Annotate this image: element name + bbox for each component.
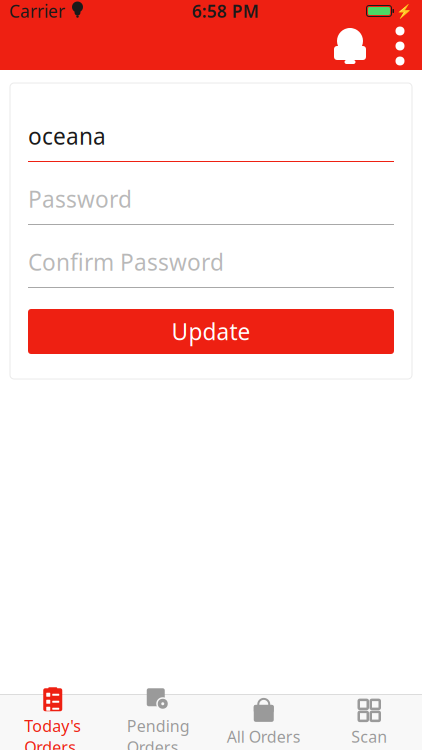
staticText: Pending Orders	[127, 715, 190, 750]
staticText: All Orders	[227, 726, 301, 747]
staticText: Password	[28, 184, 132, 214]
staticText: oceana	[28, 121, 106, 151]
staticText: Confirm Password	[28, 247, 224, 277]
staticText: Carrier	[9, 0, 65, 22]
staticText: 6:58 PM	[192, 0, 259, 22]
staticText: Scan	[351, 726, 387, 747]
button[interactable]: Pending Orders	[105, 695, 211, 750]
button[interactable]: Scan	[316, 695, 422, 750]
staticText: ⚡	[396, 3, 413, 19]
button[interactable]: Notifications	[322, 22, 378, 70]
button[interactable]: Update	[28, 309, 394, 354]
button[interactable]: Today's Orders	[0, 695, 105, 750]
button[interactable]: All Orders	[211, 695, 316, 750]
staticText: Today's Orders	[24, 715, 81, 750]
staticText: Update	[171, 316, 250, 346]
button[interactable]: More options	[378, 22, 422, 70]
